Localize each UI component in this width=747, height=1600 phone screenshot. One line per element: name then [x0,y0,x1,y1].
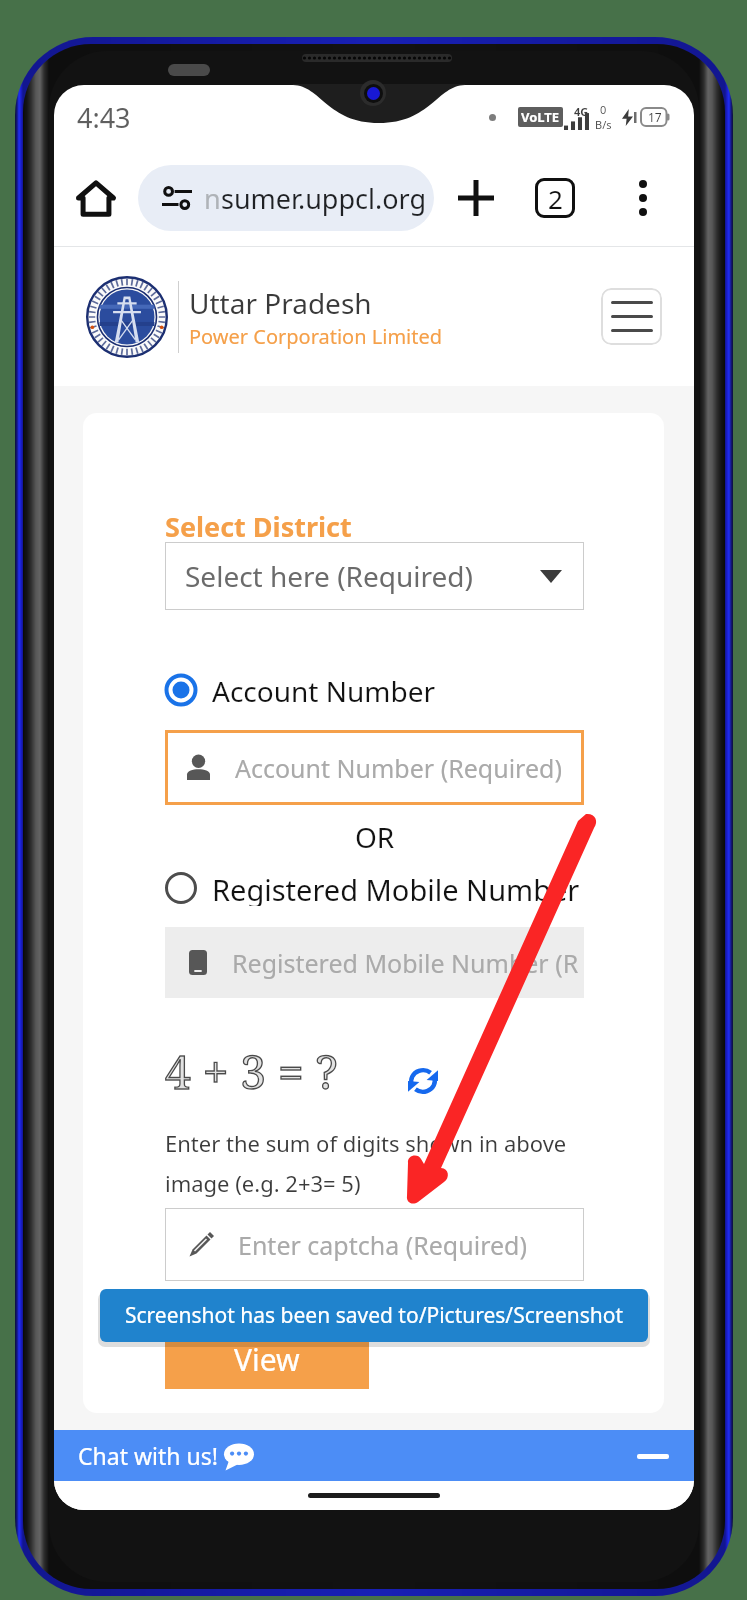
staticText: n [204,180,221,217]
button[interactable]: Account Number (Required) [165,730,584,805]
staticText: VoLTE [521,108,560,126]
staticText: 2 [548,181,563,216]
staticText: 4:43 [77,99,131,136]
staticText: Screenshot has been saved to/Pictures/Sc… [125,1301,624,1330]
staticText: Chat with us! [78,1440,218,1471]
staticText: View [234,1339,300,1380]
button[interactable]: Refresh captcha [399,1057,447,1105]
staticText: Uttar Pradesh [189,284,372,322]
staticText: 4G [574,104,589,119]
button[interactable]: Minimise chat [636,1438,670,1474]
button[interactable]: Tabs [527,170,583,226]
button[interactable]: View [165,1330,369,1389]
staticText: image (e.g. 2+3= 5) [165,1168,361,1198]
button[interactable]: Account Number [164,672,436,708]
staticText: Registered Mobile Number [212,870,580,906]
staticText: Enter captcha (Required) [238,1228,527,1262]
staticText: sumer.uppcl.org [221,180,424,217]
button[interactable]: Select here (Required) [165,542,584,610]
staticText: 0 [600,102,607,117]
button[interactable]: Registered Mobile Number [164,870,580,906]
button[interactable]: Enter captcha (Required) [165,1208,584,1281]
staticText: 17 [648,109,662,125]
staticText: Power Corporation Limited [189,323,443,350]
staticText: Enter the sum of digits shown in above [165,1128,567,1158]
staticText: 4 + 3 = ? [165,1040,338,1103]
button[interactable]: Home [66,168,126,228]
button[interactable]: Chat with us! [54,1430,694,1481]
button[interactable]: New tab [448,170,504,226]
button[interactable]: More options [615,170,671,226]
button[interactable]: Menu [601,288,662,345]
staticText: Account Number [212,672,436,708]
staticText: B/s [595,117,612,132]
staticText: Registered Mobile Number (R [232,946,579,980]
button[interactable]: n [138,165,434,231]
staticText: Select District [165,508,352,545]
staticText: 4 + 3 = ? [165,1040,338,1103]
staticText: Account Number (Required) [235,751,562,785]
staticText: OR [355,818,395,856]
staticText: Select here (Required) [185,557,473,595]
